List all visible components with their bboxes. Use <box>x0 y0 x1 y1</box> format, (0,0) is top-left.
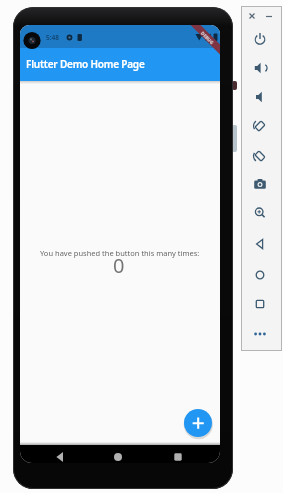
staticText: You have pushed the button this many tim… <box>40 248 200 258</box>
button[interactable] <box>251 266 269 284</box>
button[interactable] <box>251 30 269 48</box>
button[interactable]: Flutter Demo Home Page <box>20 48 220 81</box>
staticText: Flutter Demo Home Page <box>26 57 145 71</box>
button[interactable] <box>251 325 269 343</box>
button[interactable] <box>108 447 128 463</box>
button[interactable] <box>251 59 269 77</box>
staticText: 0 <box>113 252 125 279</box>
button[interactable] <box>251 88 269 106</box>
button[interactable] <box>251 147 269 165</box>
staticText: 5:48 <box>46 33 59 42</box>
button[interactable] <box>264 11 274 21</box>
button[interactable] <box>50 447 70 463</box>
button[interactable] <box>251 235 269 253</box>
button[interactable] <box>168 447 188 463</box>
button[interactable] <box>251 204 269 222</box>
button[interactable] <box>184 409 212 437</box>
button[interactable] <box>251 175 269 193</box>
button[interactable] <box>247 11 257 21</box>
button[interactable] <box>251 117 269 135</box>
staticText: DEBUG <box>200 30 215 46</box>
button[interactable] <box>251 295 269 313</box>
